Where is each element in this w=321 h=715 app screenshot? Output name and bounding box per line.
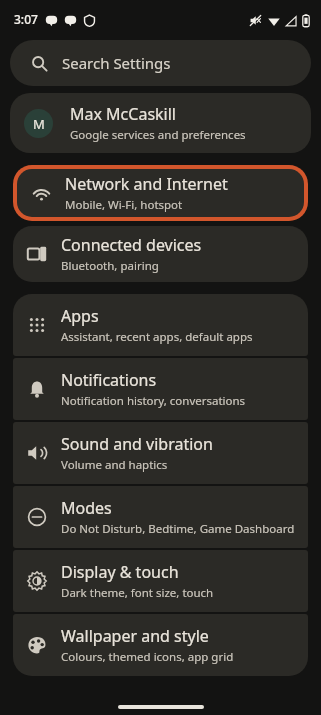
button[interactable]: Network and Internet bbox=[17, 169, 304, 217]
button[interactable]: Search Settings bbox=[10, 40, 311, 86]
staticText: Wallpaper and style bbox=[61, 625, 209, 647]
button[interactable]: Wallpaper and style bbox=[13, 614, 308, 676]
staticText: Modes bbox=[61, 497, 112, 519]
staticText: Notifications bbox=[61, 369, 157, 391]
staticText: Dark theme, font size, touch bbox=[61, 585, 214, 601]
staticText: Assistant, recent apps, default apps bbox=[61, 329, 253, 345]
staticText: Max McCaskill bbox=[70, 103, 176, 125]
button[interactable]: M bbox=[10, 93, 311, 153]
staticText: Apps bbox=[61, 305, 99, 327]
staticText: Network and Internet bbox=[65, 173, 228, 195]
button[interactable]: Sound and vibration bbox=[13, 422, 308, 484]
button[interactable]: Connected devices bbox=[13, 226, 308, 282]
button[interactable]: Display & touch bbox=[13, 550, 308, 612]
button[interactable]: Modes bbox=[13, 486, 308, 548]
staticText: M bbox=[33, 115, 45, 133]
staticText: Google services and preferences bbox=[70, 127, 246, 143]
staticText: Connected devices bbox=[61, 234, 202, 256]
staticText: Notification history, conversations bbox=[61, 393, 246, 409]
staticText: Volume and haptics bbox=[61, 457, 168, 473]
staticText: Search Settings bbox=[62, 53, 171, 73]
staticText: Display & touch bbox=[61, 561, 179, 583]
staticText: Bluetooth, pairing bbox=[61, 258, 159, 274]
staticText: Mobile, Wi-Fi, hotspot bbox=[65, 197, 183, 213]
staticText: Sound and vibration bbox=[61, 433, 213, 455]
button[interactable]: Apps bbox=[13, 294, 308, 356]
staticText: Colours, themed icons, app grid bbox=[61, 649, 234, 665]
staticText: 3:07 bbox=[14, 11, 38, 27]
button[interactable]: Notifications bbox=[13, 358, 308, 420]
staticText: Do Not Disturb, Bedtime, Game Dashboard bbox=[61, 521, 295, 537]
